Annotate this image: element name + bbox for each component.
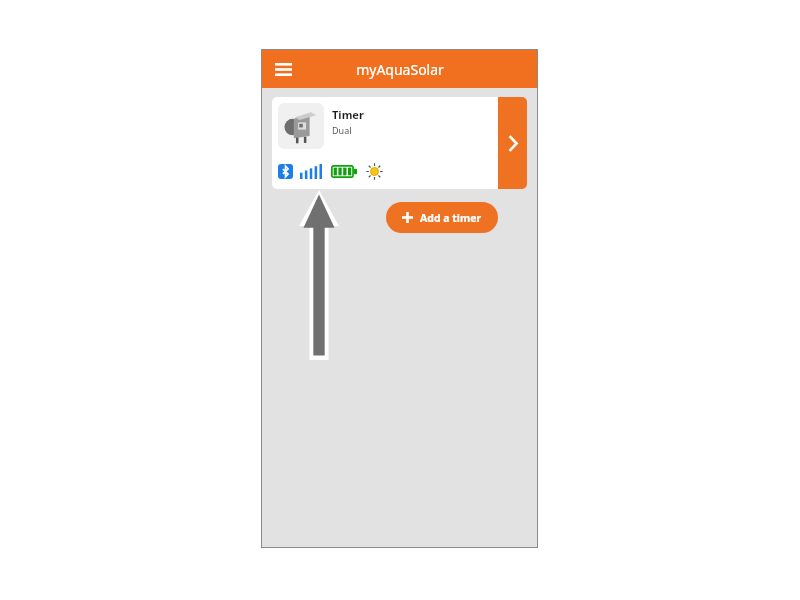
staticText: Add a timer: [420, 211, 482, 225]
staticText: myAquaSolar: [356, 60, 444, 79]
button[interactable]: Add a timer: [386, 202, 498, 233]
button[interactable]: Open navigation menu: [269, 55, 297, 83]
staticText: Dual: [332, 124, 352, 136]
staticText: Timer: [332, 107, 364, 122]
button[interactable]: Timer: [272, 97, 527, 189]
button[interactable]: Open timer details: [498, 97, 527, 189]
